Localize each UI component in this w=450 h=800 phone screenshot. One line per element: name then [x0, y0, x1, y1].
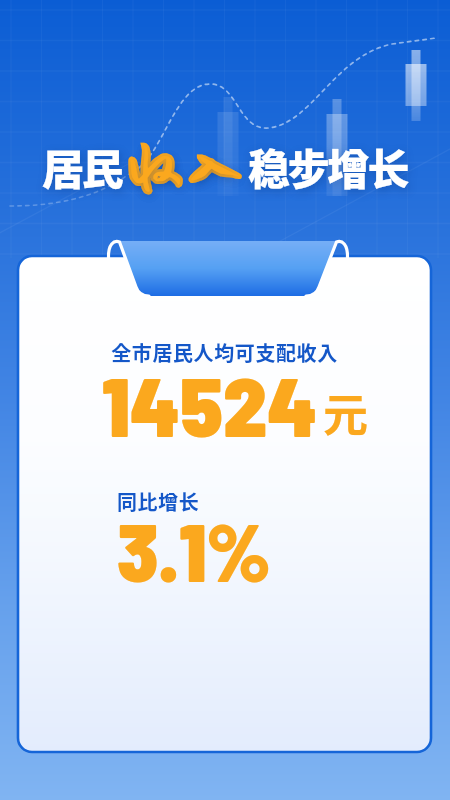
staticText: 全市居民人均可支配收入 [18, 338, 431, 367]
staticText: 元 [323, 380, 369, 445]
staticText: 稳步增长 [248, 136, 408, 197]
staticText: 收入 [126, 137, 245, 195]
staticText: 同比增长 [117, 487, 200, 516]
button[interactable]: 全市居民人均可支配收入 [18, 256, 431, 752]
staticText: 居民 [42, 136, 122, 197]
staticText: 收入 [126, 137, 245, 195]
staticText: 3.1% [117, 500, 271, 598]
staticText: 14524 [102, 353, 318, 454]
